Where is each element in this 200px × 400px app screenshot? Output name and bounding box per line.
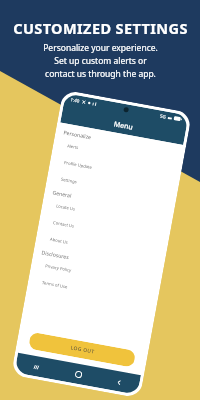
button[interactable]: About Us [38,229,164,268]
staticText: Contact Us [52,220,75,230]
button[interactable]: Alerts [55,135,181,175]
staticText: Personalize your experience. Set up cust… [43,42,158,80]
staticText: Locate Us [55,203,76,213]
staticText: 1:40 [70,96,80,104]
button[interactable]: Recent apps [31,361,41,372]
button[interactable]: Terms of Use [30,272,156,311]
button[interactable]: Home [72,368,84,380]
staticText: Disclosures [41,248,70,260]
staticText: CUSTOMIZED SETTINGS [13,18,188,38]
staticText: LOG OUT [70,344,95,355]
staticText: Settings [60,177,77,185]
staticText: About Us [49,237,69,246]
staticText: Terms of Use [41,280,68,290]
staticText: Personalize [63,128,92,140]
staticText: Menu [113,119,134,133]
staticText: General [52,188,73,199]
button[interactable]: LOG OUT [28,332,136,368]
button[interactable]: Settings [49,169,175,208]
button[interactable]: Privacy Policy [33,255,159,295]
button[interactable]: Contact Us [41,212,167,251]
button[interactable]: Profile Update [52,152,178,191]
staticText: Alerts [67,143,79,151]
staticText: 5G [160,112,167,119]
button[interactable]: Back [114,377,124,387]
button[interactable]: Locate Us [44,195,170,235]
staticText: Profile Update [63,160,93,171]
staticText: Privacy Policy [44,263,72,274]
